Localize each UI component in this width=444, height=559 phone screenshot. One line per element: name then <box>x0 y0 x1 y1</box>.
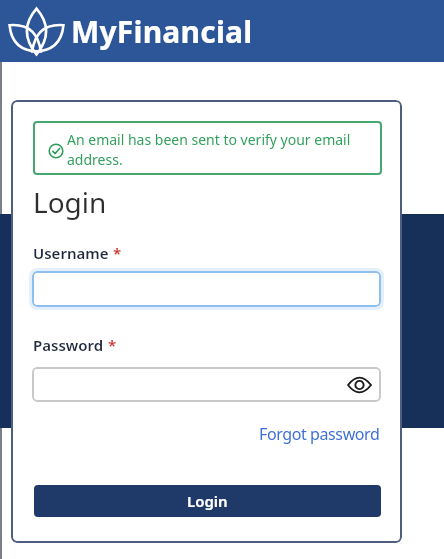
staticText: Login <box>187 491 228 511</box>
button[interactable] <box>32 367 381 402</box>
staticText: An email has been sent to verify your em… <box>67 130 351 169</box>
staticText: Password <box>33 335 104 355</box>
staticText: * <box>104 335 117 355</box>
button[interactable]: Forgot password <box>259 423 380 445</box>
button[interactable] <box>347 377 372 393</box>
staticText: MyFinancial <box>71 11 253 52</box>
button[interactable]: Login <box>34 485 381 517</box>
staticText: * <box>109 243 122 263</box>
button[interactable] <box>32 271 381 307</box>
staticText: Username <box>33 243 109 263</box>
staticText: Login <box>33 183 107 221</box>
